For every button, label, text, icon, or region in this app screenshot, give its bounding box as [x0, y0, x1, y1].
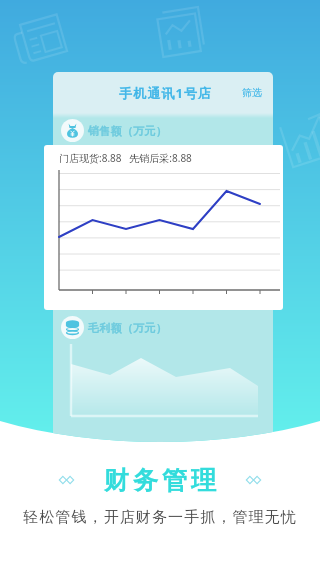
- staticText: 销售额（万元）: [88, 124, 168, 138]
- staticText: 毛利额（万元）: [88, 321, 168, 335]
- staticText: 门店现货:8.88 先销后采:8.88: [59, 151, 192, 165]
- staticText: 手机通讯1号店: [119, 84, 213, 102]
- button[interactable]: 毛利额（万元）: [61, 316, 168, 339]
- staticText: 财务管理: [102, 465, 218, 496]
- button[interactable]: 手机通讯1号店: [53, 72, 273, 113]
- staticText: 筛选: [242, 86, 262, 99]
- staticText: 轻松管钱，开店财务一手抓，管理无忧: [0, 508, 320, 527]
- button[interactable]: 销售额（万元）: [61, 119, 168, 142]
